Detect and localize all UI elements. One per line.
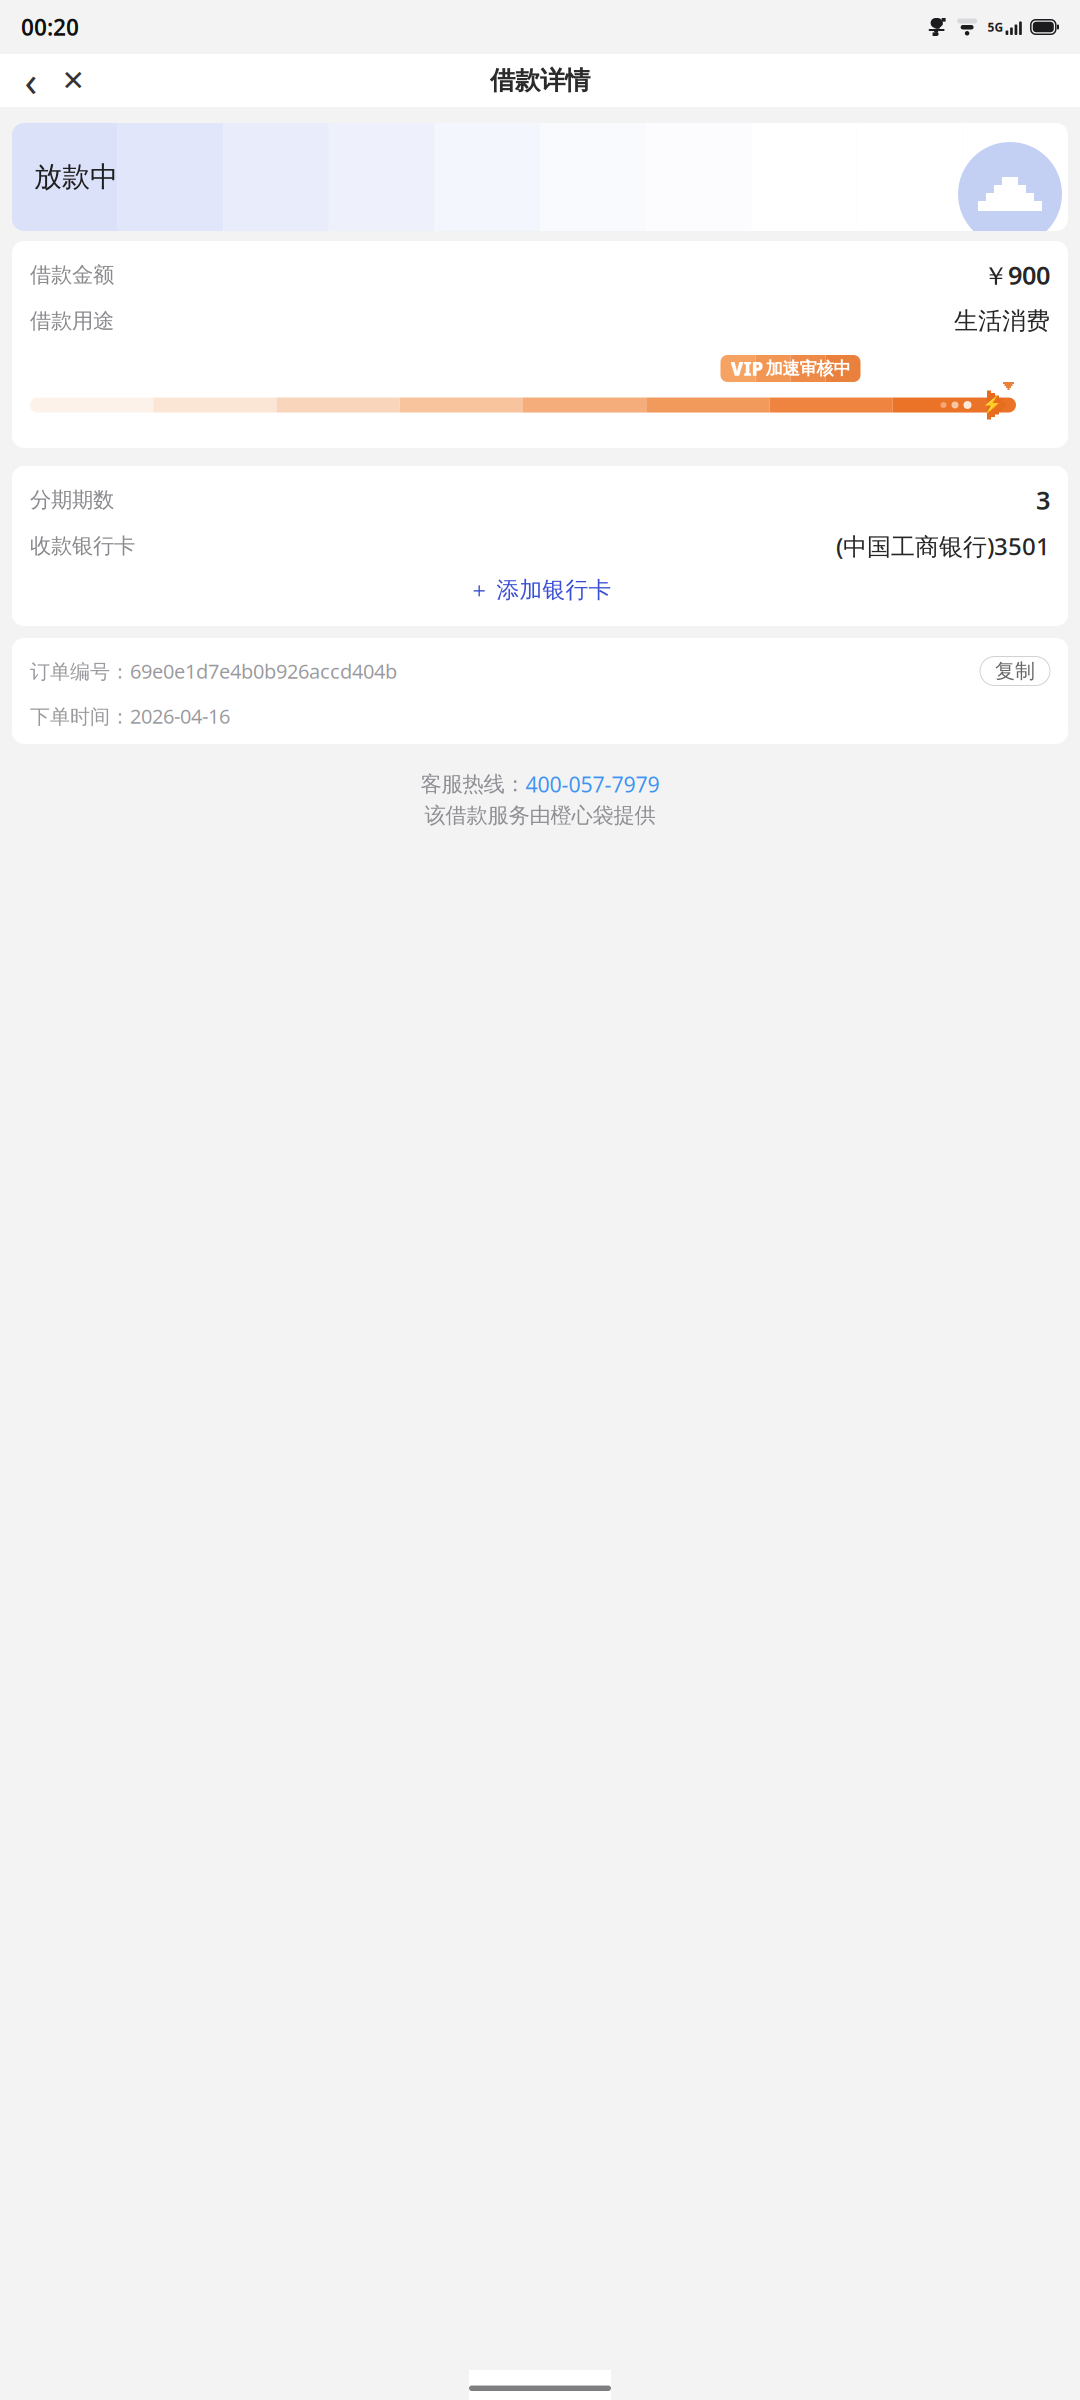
staticText: 借款用途	[30, 308, 114, 334]
staticText: 00:20	[21, 12, 79, 42]
staticText: 3	[1036, 483, 1050, 517]
staticText: 加速审核中	[765, 358, 850, 379]
staticText: ✕	[61, 65, 84, 96]
staticText: (中国工商银行)3501	[836, 530, 1050, 562]
staticText: 添加银行卡	[496, 576, 611, 604]
staticText: 借款详情	[490, 65, 590, 96]
staticText: 收款银行卡	[30, 533, 135, 559]
staticText: 订单编号：69e0e1d7e4b0b926accd404b	[30, 658, 397, 684]
staticText: ＋	[468, 577, 489, 603]
button[interactable]: 关闭	[52, 58, 94, 102]
button[interactable]: 返回	[10, 58, 52, 102]
staticText: 400-057-7979	[525, 770, 659, 798]
staticText: 借款金额	[30, 262, 114, 288]
staticText: 5G	[988, 19, 1004, 35]
staticText: 客服热线：	[420, 771, 525, 797]
staticText: 复制	[995, 659, 1035, 683]
button[interactable]: ＋	[30, 572, 1050, 608]
button[interactable]: 客服热线：	[420, 770, 659, 798]
staticText: VIP	[730, 356, 763, 381]
staticText: ⚡	[982, 396, 1002, 414]
staticText: 该借款服务由橙心袋提供	[424, 802, 655, 828]
staticText: 放款中	[34, 160, 118, 194]
staticText: 下单时间：2026-04-16	[30, 703, 230, 729]
staticText: ‹	[24, 53, 37, 108]
staticText: 分期期数	[30, 487, 114, 513]
staticText: ￥900	[983, 258, 1050, 292]
button[interactable]: 复制	[980, 656, 1050, 685]
staticText: 生活消费	[954, 306, 1050, 336]
